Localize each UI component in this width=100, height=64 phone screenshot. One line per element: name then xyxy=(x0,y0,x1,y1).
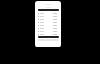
button[interactable] xyxy=(38,33,59,35)
button[interactable] xyxy=(38,21,59,23)
button[interactable] xyxy=(38,15,59,17)
button[interactable] xyxy=(38,36,59,38)
button[interactable] xyxy=(38,9,59,11)
button[interactable] xyxy=(38,30,59,32)
button[interactable] xyxy=(38,27,59,29)
button[interactable] xyxy=(38,18,59,20)
button[interactable] xyxy=(38,12,59,14)
button[interactable] xyxy=(38,24,59,26)
